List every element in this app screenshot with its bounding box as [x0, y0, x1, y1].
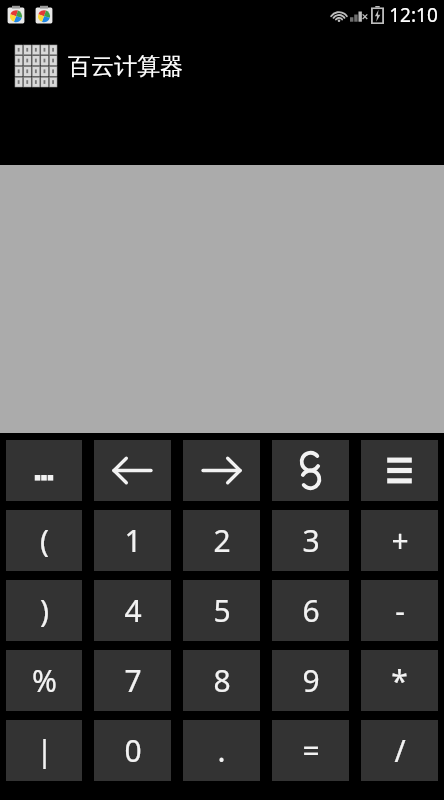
button[interactable]: - [361, 580, 438, 641]
button[interactable]: 8 [183, 650, 260, 711]
staticText: 1 [124, 520, 142, 561]
button[interactable]: % [6, 650, 82, 711]
button[interactable]: 9 [272, 650, 349, 711]
staticText: 5 [213, 590, 231, 631]
staticText: . [217, 730, 226, 771]
button[interactable]: Integral [272, 440, 349, 501]
staticText: 8 [213, 660, 231, 701]
staticText: % [32, 660, 57, 701]
staticText: 2 [213, 520, 231, 561]
button[interactable]: . [183, 720, 260, 781]
button[interactable]: | [6, 720, 82, 781]
button[interactable]: 6 [272, 580, 349, 641]
staticText: 7 [124, 660, 142, 701]
button[interactable]: * [361, 650, 438, 711]
button[interactable]: Move left [94, 440, 171, 501]
button[interactable]: More [6, 440, 82, 501]
staticText: 0 [124, 730, 142, 771]
staticText: 9 [302, 660, 320, 701]
button[interactable]: 0 [94, 720, 171, 781]
staticText: 12:10 [389, 2, 438, 28]
staticText: = [302, 730, 320, 771]
button[interactable]: + [361, 510, 438, 571]
button[interactable]: 1 [94, 510, 171, 571]
button[interactable]: = [272, 720, 349, 781]
button[interactable]: ( [6, 510, 82, 571]
staticText: * [391, 660, 408, 701]
staticText: - [395, 590, 405, 631]
button[interactable]: 2 [183, 510, 260, 571]
staticText: / [394, 730, 406, 771]
button[interactable]: 5 [183, 580, 260, 641]
button[interactable]: 4 [94, 580, 171, 641]
button[interactable]: / [361, 720, 438, 781]
staticText: | [36, 730, 53, 771]
button[interactable]: 7 [94, 650, 171, 711]
button[interactable]: Move right [183, 440, 260, 501]
staticText: ) [40, 590, 49, 631]
staticText: ( [40, 520, 49, 561]
staticText: 3 [302, 520, 320, 561]
staticText: 6 [302, 590, 320, 631]
button[interactable]: ) [6, 580, 82, 641]
button[interactable]: Menu [361, 440, 438, 501]
staticText: 4 [124, 590, 142, 631]
button[interactable]: 3 [272, 510, 349, 571]
staticText: 百云计算器 [68, 52, 183, 81]
staticText: + [391, 520, 409, 561]
